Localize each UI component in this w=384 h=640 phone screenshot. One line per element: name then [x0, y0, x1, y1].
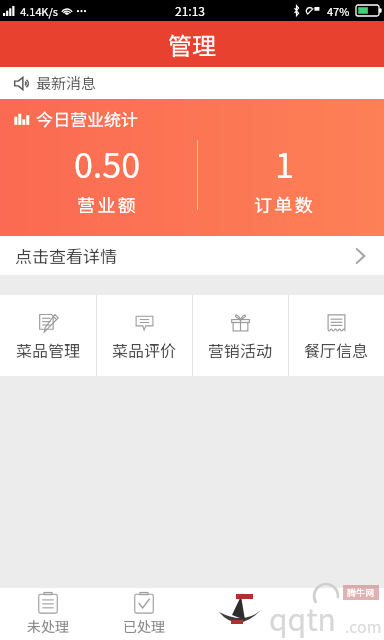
- staticText: .com: [345, 614, 382, 637]
- staticText: 营业额: [77, 191, 139, 217]
- staticText: 订单数: [254, 191, 316, 217]
- staticText: 腾牛网: [347, 586, 375, 599]
- button[interactable]: 最新消息: [0, 67, 384, 99]
- button[interactable]: 未处理: [0, 588, 96, 640]
- button[interactable]: 营销活动: [192, 295, 288, 376]
- staticText: 0.50: [74, 139, 141, 188]
- button[interactable]: 0.50: [19, 139, 196, 217]
- button[interactable]: 已处理: [96, 588, 192, 640]
- staticText: qqtn: [269, 596, 336, 639]
- button[interactable]: 点击查看详情: [0, 236, 384, 275]
- staticText: 菜品管理: [16, 338, 81, 361]
- staticText: 1: [275, 139, 294, 188]
- staticText: 4.14K/s: [20, 3, 58, 19]
- button[interactable]: 菜品评价: [96, 295, 192, 376]
- staticText: 最新消息: [36, 72, 97, 94]
- staticText: 已处理: [123, 616, 165, 636]
- staticText: 点击查看详情: [15, 243, 117, 268]
- staticText: 菜品评价: [112, 338, 177, 361]
- staticText: 餐厅信息: [304, 338, 369, 361]
- staticText: 管理: [168, 27, 216, 62]
- staticText: 47%: [327, 3, 350, 19]
- button[interactable]: 餐厅信息: [288, 295, 384, 376]
- button[interactable]: 1: [196, 139, 373, 217]
- staticText: 21:13: [175, 2, 205, 19]
- staticText: 未处理: [27, 616, 69, 636]
- staticText: 营销活动: [208, 338, 273, 361]
- button[interactable]: 菜品管理: [0, 295, 96, 376]
- staticText: 今日营业统计: [36, 106, 138, 131]
